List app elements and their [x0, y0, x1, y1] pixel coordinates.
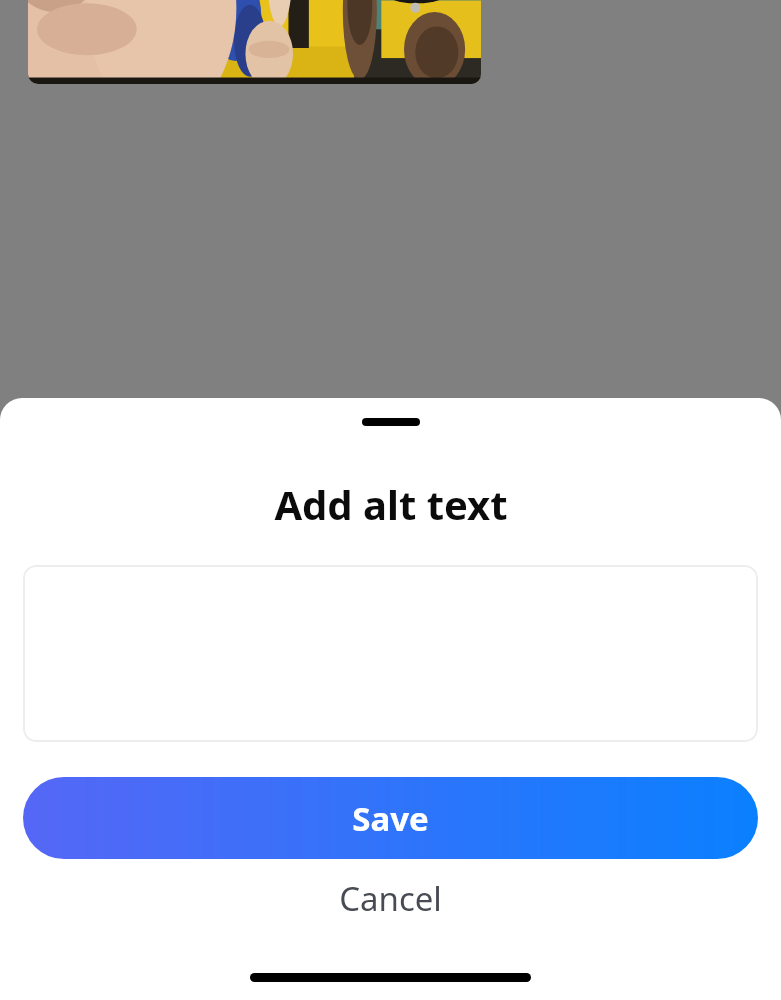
staticText: Cancel [339, 876, 442, 921]
staticText: Save [352, 796, 429, 841]
button[interactable]: Cancel [0, 859, 781, 937]
staticText: Add alt text [274, 477, 508, 531]
button[interactable]: Save [23, 777, 758, 859]
